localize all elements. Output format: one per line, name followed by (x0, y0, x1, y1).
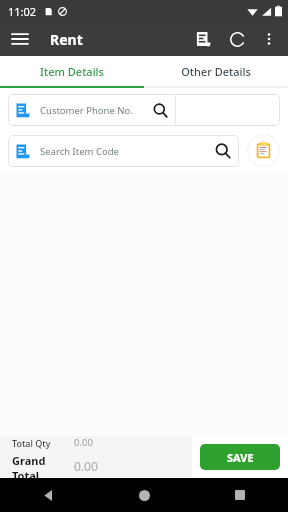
button[interactable]: Recent apps (192, 478, 288, 512)
button[interactable] (176, 94, 280, 126)
button[interactable]: Receipts (186, 22, 220, 56)
staticText: Customer Phone No. (40, 104, 133, 117)
button[interactable]: Other Details (144, 56, 288, 86)
staticText: 11:02 (8, 4, 37, 19)
button[interactable]: SAVE (200, 444, 280, 470)
staticText: 0.00 (74, 458, 98, 474)
staticText: Search Item Code (40, 145, 119, 158)
button[interactable]: Refresh (220, 22, 254, 56)
button[interactable]: More options (254, 24, 284, 54)
button[interactable]: Home (96, 478, 192, 512)
button[interactable]: Back (0, 478, 96, 512)
staticText: 0.00 (74, 436, 93, 449)
staticText: Grand Total (12, 453, 74, 478)
button[interactable]: Item Details (0, 56, 144, 86)
staticText: Total Qty (12, 437, 74, 449)
button[interactable]: Open navigation menu (0, 22, 40, 56)
staticText: Other Details (181, 64, 251, 79)
button[interactable]: Search Item Code (8, 135, 239, 167)
button[interactable]: Customer Phone No. (8, 94, 175, 126)
button[interactable]: Order list (247, 134, 280, 167)
staticText: Rent (50, 30, 83, 49)
staticText: Item Details (40, 64, 104, 79)
staticText: SAVE (227, 450, 254, 465)
